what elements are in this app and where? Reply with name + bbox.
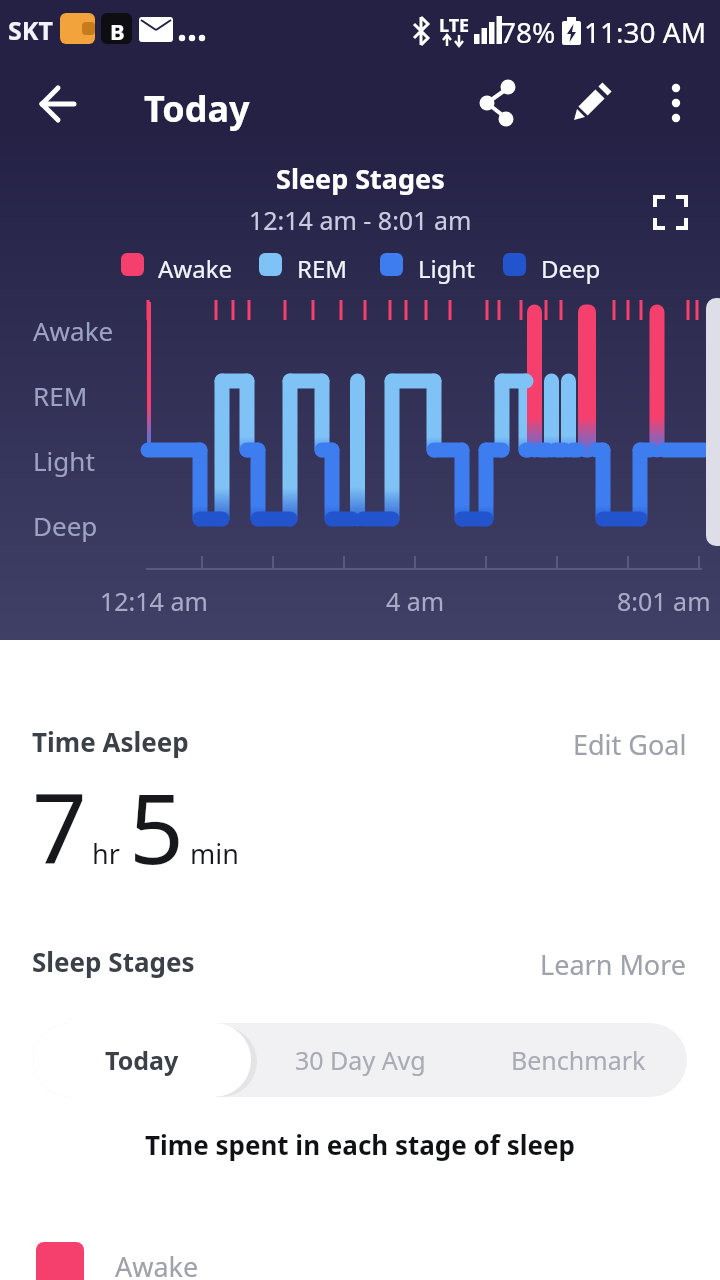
staticText: Sleep Stages bbox=[276, 160, 445, 197]
staticText: Sleep Stages bbox=[32, 944, 195, 979]
staticText: 11:30 AM bbox=[584, 13, 707, 51]
staticText: Time Asleep bbox=[32, 724, 189, 759]
button[interactable] bbox=[473, 79, 523, 127]
staticText: 7 bbox=[32, 761, 87, 892]
staticText: 30 Day Avg bbox=[295, 1043, 426, 1077]
staticText: Light bbox=[418, 252, 476, 285]
staticText: hr bbox=[92, 835, 120, 872]
button[interactable] bbox=[656, 79, 696, 127]
button[interactable] bbox=[30, 80, 82, 128]
button[interactable]: Today bbox=[33, 1023, 251, 1097]
button[interactable]: Edit Goal bbox=[573, 726, 687, 763]
staticText: Today bbox=[105, 1043, 179, 1077]
staticText: Time spent in each stage of sleep bbox=[145, 1127, 575, 1162]
staticText: 12:14 am - 8:01 am bbox=[249, 203, 472, 237]
button[interactable] bbox=[568, 79, 618, 127]
button[interactable] bbox=[648, 190, 694, 236]
staticText: 8:01 am bbox=[617, 584, 711, 618]
staticText: Awake bbox=[115, 1248, 199, 1280]
button[interactable]: Awake bbox=[0, 1236, 720, 1280]
staticText: Light bbox=[33, 443, 95, 478]
button[interactable]: 30 Day Avg bbox=[251, 1023, 469, 1097]
staticText: REM bbox=[297, 252, 348, 285]
staticText: 78% bbox=[500, 13, 556, 51]
staticText: Deep bbox=[541, 252, 601, 285]
staticText: 12:14 am bbox=[100, 584, 208, 618]
staticText: Awake bbox=[158, 252, 233, 285]
staticText: B bbox=[110, 16, 125, 46]
staticText: 5 bbox=[129, 761, 184, 892]
button[interactable]: Learn More bbox=[540, 946, 687, 983]
staticText: Deep bbox=[33, 508, 98, 543]
staticText: Benchmark bbox=[511, 1043, 646, 1077]
staticText: 4 am bbox=[386, 584, 445, 618]
staticText: min bbox=[190, 835, 239, 872]
staticText: LTE bbox=[439, 13, 470, 38]
staticText: Today bbox=[144, 84, 250, 133]
staticText: REM bbox=[33, 378, 88, 413]
staticText: SKT bbox=[8, 13, 53, 47]
button[interactable]: Benchmark bbox=[469, 1023, 687, 1097]
staticText: Awake bbox=[33, 313, 114, 348]
